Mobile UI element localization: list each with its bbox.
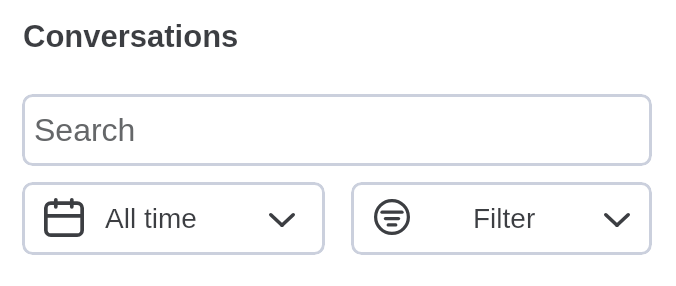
- other: Filter options: [374, 199, 410, 235]
- staticText: All time: [105, 203, 197, 234]
- other: Expand: [604, 213, 630, 227]
- other: Date range: [44, 198, 84, 237]
- button[interactable]: Filter options: [351, 182, 652, 255]
- button[interactable]: Date range: [22, 182, 325, 255]
- staticText: Conversations: [23, 19, 239, 54]
- staticText: Search: [34, 112, 136, 148]
- button[interactable]: Search: [22, 94, 652, 166]
- other: Expand: [269, 213, 295, 227]
- staticText: Filter: [473, 203, 536, 234]
